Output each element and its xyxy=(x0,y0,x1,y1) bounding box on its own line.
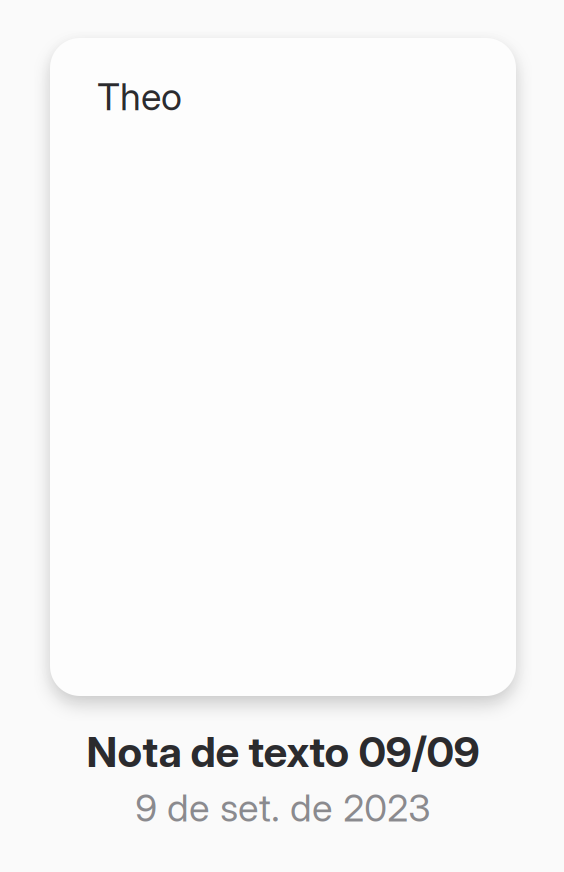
staticText: Nota de texto 09/09 xyxy=(86,726,479,777)
staticText: 9 de set. de 2023 xyxy=(135,785,431,831)
button[interactable]: Theo xyxy=(0,0,564,872)
staticText: Theo xyxy=(97,74,182,119)
